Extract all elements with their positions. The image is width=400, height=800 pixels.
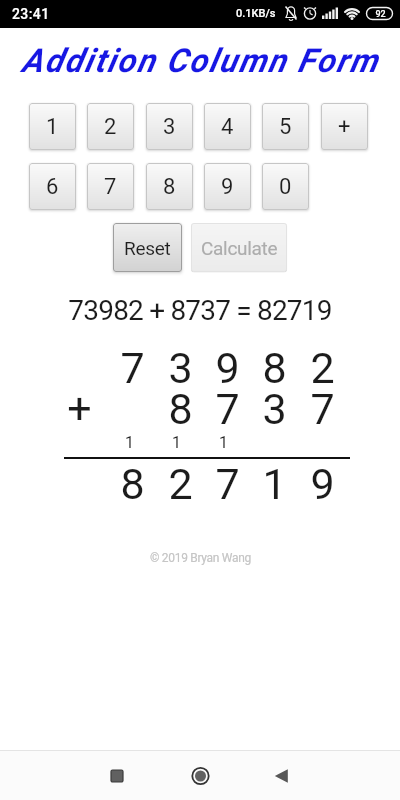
staticText: 2 [168,459,193,509]
button[interactable]: Calculate [191,223,287,272]
staticText: Reset [124,237,171,259]
button[interactable]: 1 [29,103,76,150]
staticText: + [338,114,351,140]
button[interactable]: 6 [29,163,76,210]
staticText: 3 [168,343,193,393]
staticText: 6 [46,174,59,200]
staticText: Addition Column Form [21,41,379,80]
button[interactable] [95,758,139,794]
staticText: Calculate [201,237,278,259]
staticText: 0 [279,174,292,200]
button[interactable] [178,758,222,794]
staticText: 7 [120,343,145,393]
staticText: 1 [219,433,228,452]
staticText: 1 [262,459,287,509]
staticText: 0.1KB/s [236,7,276,20]
staticText: 92 [375,9,386,20]
staticText: + [67,383,92,433]
staticText: 7 [104,174,117,200]
staticText: 3 [163,114,176,140]
button[interactable]: 2 [87,103,134,150]
staticText: © 2019 Bryan Wang [150,551,251,565]
staticText: 5 [279,114,292,140]
staticText: 3 [262,384,287,434]
staticText: 7 [215,459,240,509]
staticText: 9 [215,343,240,393]
staticText: 2 [104,114,117,140]
button[interactable]: 7 [87,163,134,210]
staticText: 23:41 [12,6,50,22]
staticText: 7 [215,384,240,434]
staticText: 1 [172,433,181,452]
staticText: 9 [310,459,335,509]
staticText: 7 [310,384,335,434]
button[interactable]: 4 [204,103,251,150]
button[interactable]: 0 [262,163,309,210]
button[interactable] [261,758,305,794]
staticText: 8 [163,174,176,200]
button[interactable]: 8 [146,163,193,210]
staticText: 2 [310,343,335,393]
button[interactable]: + [321,103,368,150]
staticText: 4 [221,114,234,140]
staticText: 9 [221,174,234,200]
staticText: 8 [168,384,193,434]
staticText: 8 [120,459,145,509]
button[interactable]: 3 [146,103,193,150]
staticText: 1 [46,114,59,140]
staticText: 8 [262,343,287,393]
button[interactable]: 5 [262,103,309,150]
button[interactable]: Reset [113,223,182,272]
staticText: 1 [125,433,134,452]
button[interactable]: 9 [204,163,251,210]
staticText: 73982 + 8737 = 82719 [68,294,332,327]
